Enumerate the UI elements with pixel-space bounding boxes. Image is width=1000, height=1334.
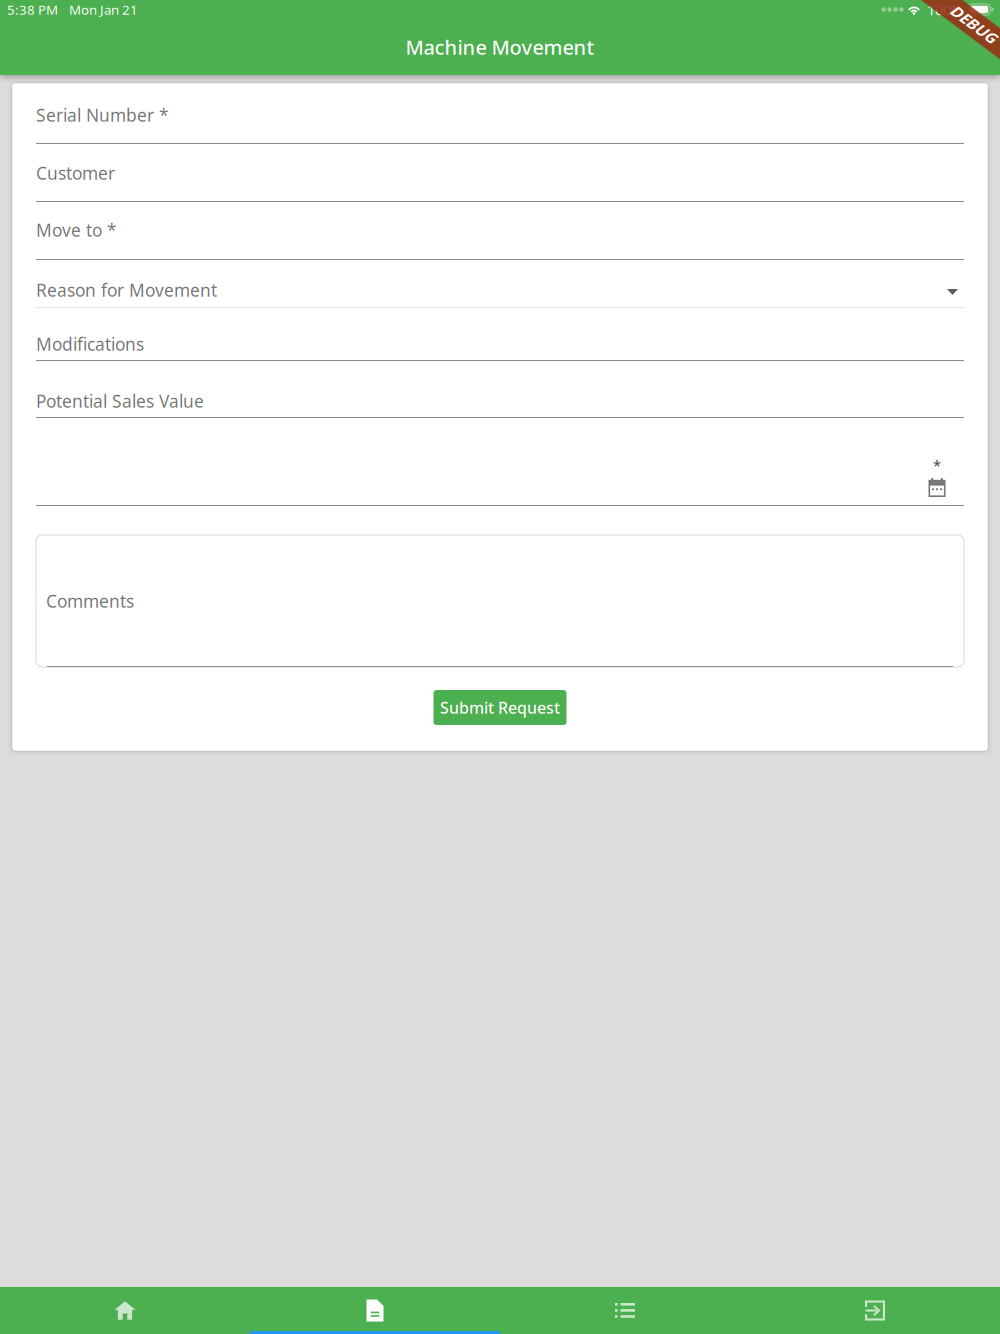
- staticText: *: [933, 455, 941, 475]
- button[interactable]: Home: [0, 1287, 250, 1334]
- staticText: 100%: [927, 0, 963, 19]
- staticText: Modifications: [36, 332, 144, 355]
- staticText: Serial Number *: [36, 103, 169, 126]
- button[interactable]: Customer: [36, 144, 964, 202]
- staticText: 5:38 PM: [7, 1, 58, 18]
- button[interactable]: Submit Request: [433, 690, 566, 725]
- button[interactable]: Potential Sales Value: [36, 361, 964, 418]
- staticText: Submit Request: [440, 697, 560, 718]
- button[interactable]: Reason for Movement: [36, 260, 964, 308]
- button[interactable]: Serial Number *: [36, 83, 964, 144]
- staticText: Mon Jan 21: [69, 1, 138, 18]
- staticText: Move to *: [36, 218, 117, 241]
- staticText: Reason for Movement: [36, 278, 217, 301]
- staticText: DEBUG: [952, 16, 998, 34]
- staticText: Comments: [46, 589, 134, 612]
- staticText: Machine Movement: [405, 34, 594, 60]
- button[interactable]: Records: [500, 1287, 750, 1334]
- button[interactable]: Forms: [250, 1287, 500, 1334]
- staticText: Potential Sales Value: [36, 389, 204, 412]
- button[interactable]: Move to *: [36, 202, 964, 260]
- button[interactable]: Modifications: [36, 308, 964, 361]
- staticText: Customer: [36, 161, 115, 184]
- button[interactable]: Log out: [750, 1287, 1000, 1334]
